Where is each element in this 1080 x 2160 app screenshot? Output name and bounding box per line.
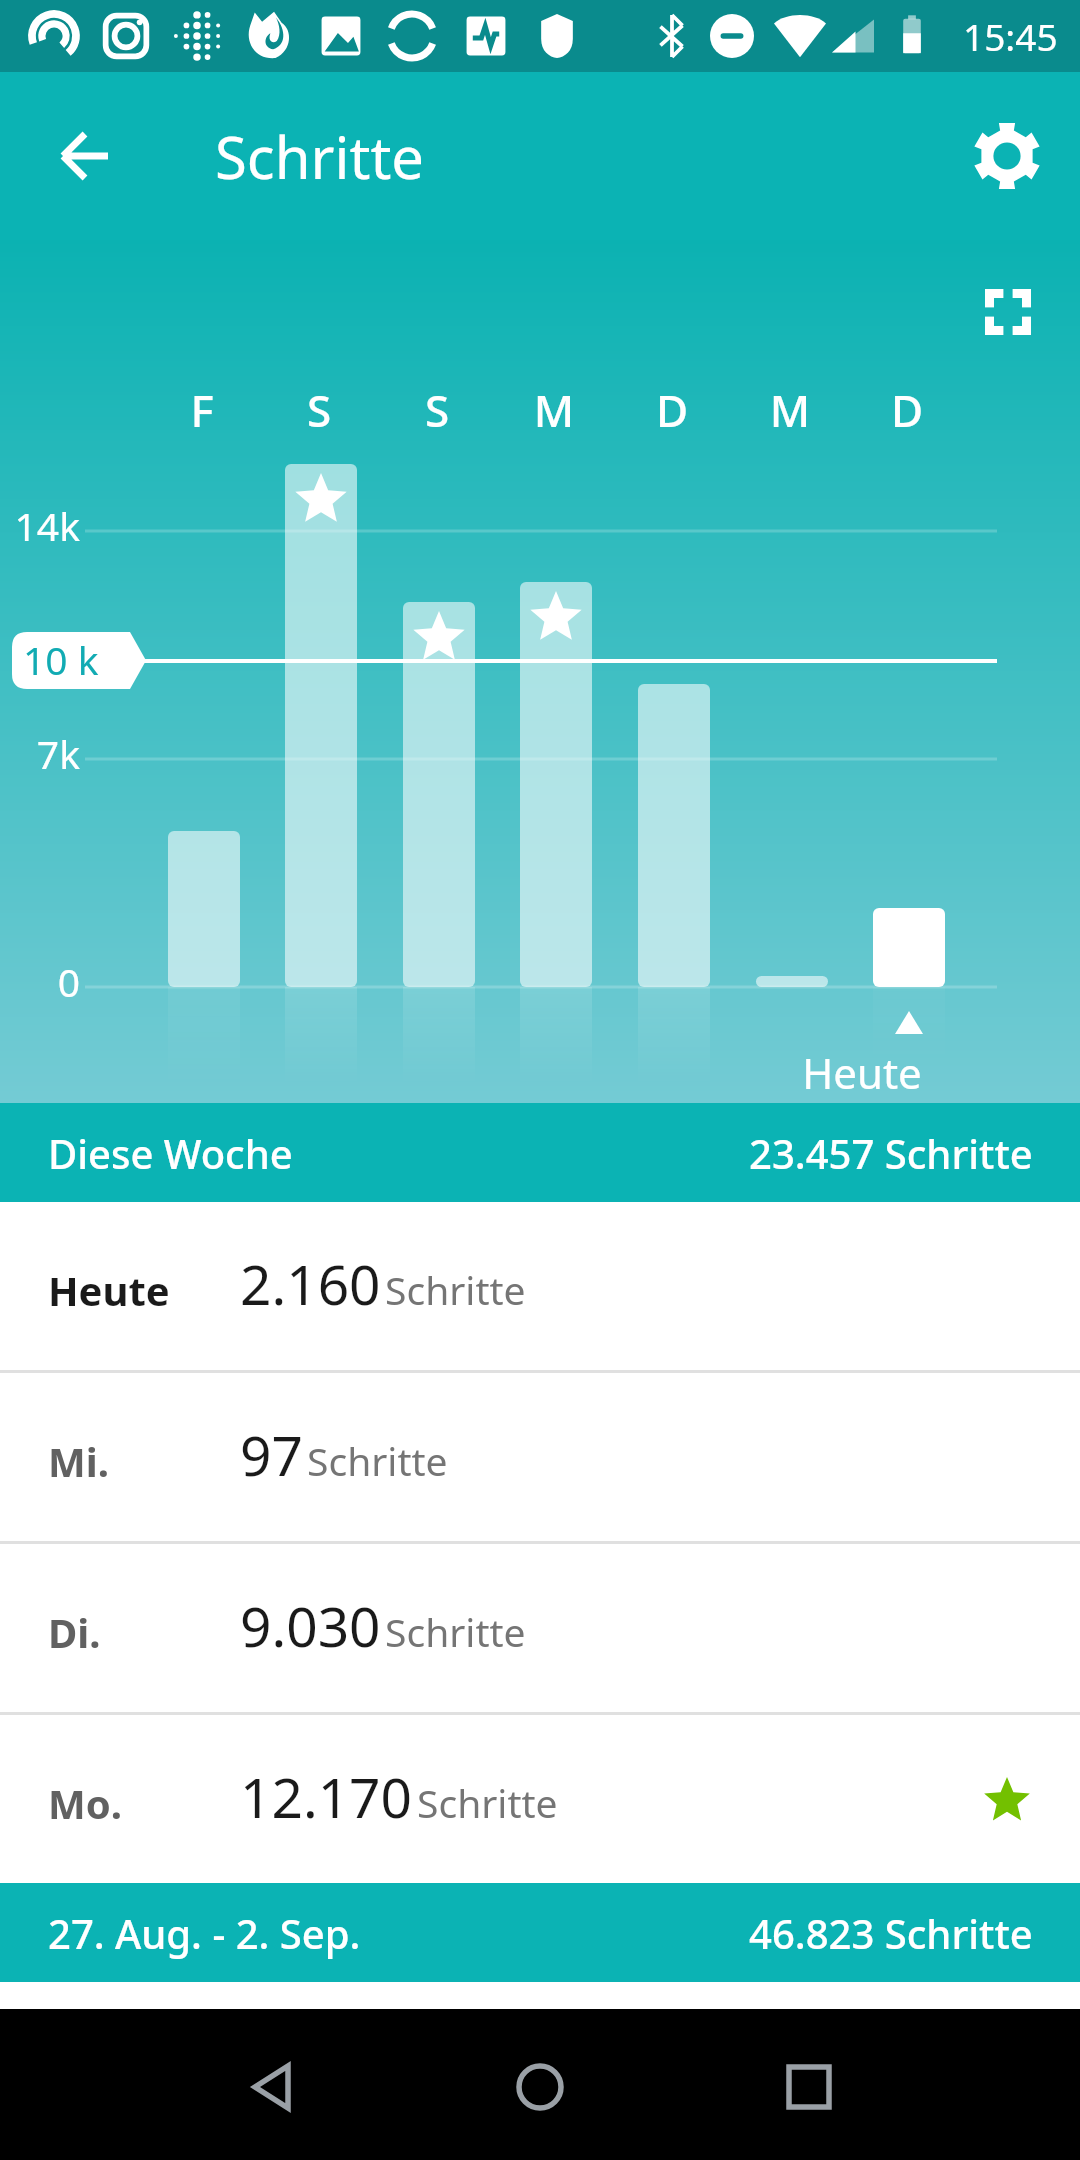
staticText: 0 [0,955,80,1008]
button[interactable]: Zurück [212,2009,332,2160]
staticText: M [498,380,610,440]
staticText: 97 [240,1417,303,1492]
staticText: Mi. [48,1434,109,1488]
button[interactable]: Letzte Apps [749,2009,869,2160]
staticText: 12.170 [240,1759,413,1834]
button[interactable]: Di. [0,1544,1080,1712]
staticText: Schritte [307,1434,448,1487]
button[interactable]: Einstellungen [952,101,1062,211]
staticText: S [263,380,375,440]
button[interactable]: Zurück [24,96,144,216]
staticText: Heute [762,1044,962,1101]
staticText: Heute [48,1263,170,1317]
staticText: 10 k [23,633,99,686]
button[interactable]: Heute [0,1202,1080,1370]
staticText: 7k [0,727,80,780]
staticText: M [734,380,846,440]
button[interactable]: Startbildschirm [480,2009,600,2160]
staticText: 15:45 [963,11,1058,61]
staticText: Schritte [215,117,425,196]
staticText: D [851,380,963,440]
staticText: 23.457 Schritte [749,1126,1033,1180]
button[interactable]: Mo. [0,1715,1080,1883]
button[interactable]: 27. Aug. - 2. Sep. [0,1883,1080,1982]
staticText: Schritte [385,1605,526,1658]
staticText: 9.030 [240,1588,381,1663]
staticText: Diese Woche [48,1126,293,1180]
staticText: 2.160 [240,1246,381,1321]
staticText: Schritte [385,1263,526,1316]
button[interactable]: Mi. [0,1373,1080,1541]
staticText: 14k [0,499,80,552]
staticText: D [616,380,728,440]
staticText: F [146,380,258,440]
staticText: Schritte [417,1776,558,1829]
button[interactable]: Vollbild [958,262,1058,362]
staticText: 27. Aug. - 2. Sep. [48,1906,361,1960]
staticText: Mo. [48,1776,122,1830]
button[interactable]: Diese Woche [0,1103,1080,1202]
staticText: Di. [48,1605,101,1659]
staticText: S [381,380,493,440]
staticText: 46.823 Schritte [749,1906,1033,1960]
